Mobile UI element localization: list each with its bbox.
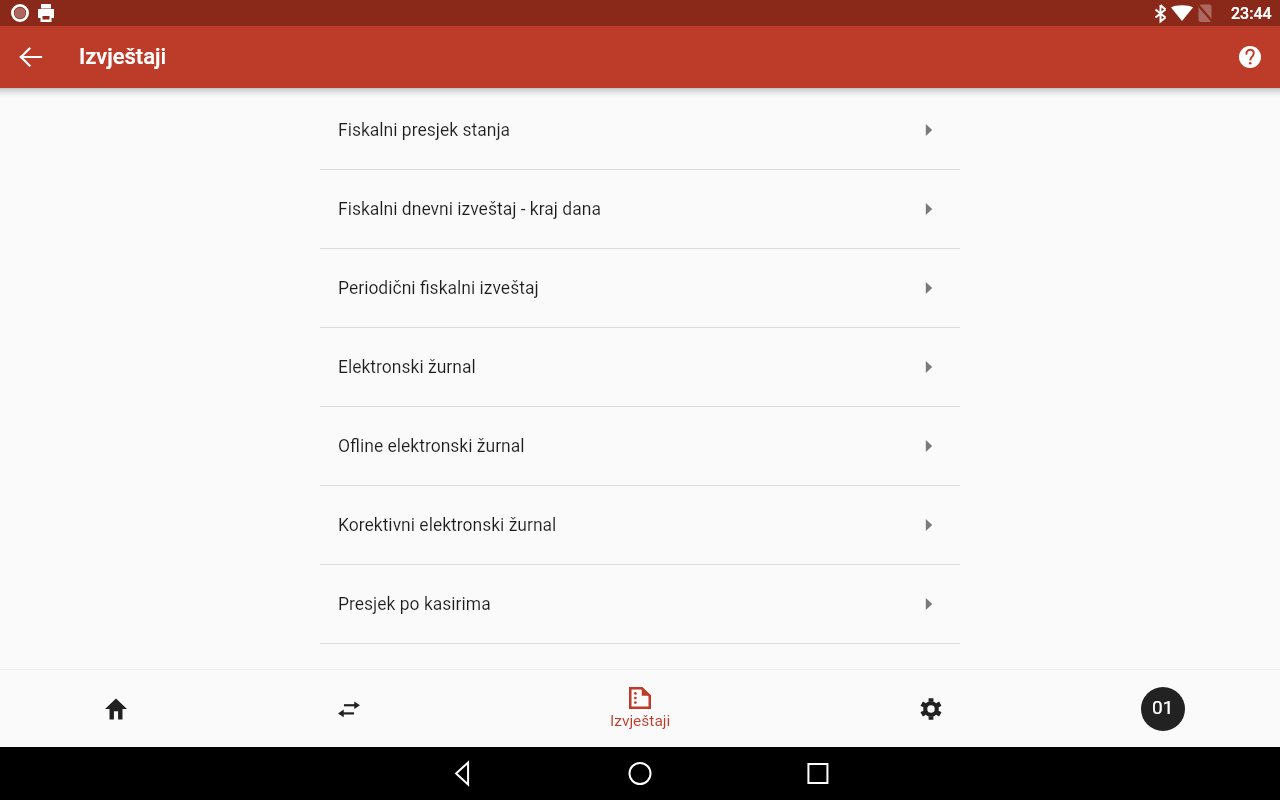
staticText: 23:44 (1231, 4, 1272, 23)
button[interactable]: Presjek po kasirima (0, 565, 1280, 643)
button[interactable]: Help (1226, 33, 1274, 81)
button[interactable]: Ofline elektronski žurnal (0, 407, 1280, 485)
staticText: 01 (1152, 696, 1174, 718)
button[interactable]: Fiskalni presjek stanja (0, 91, 1280, 169)
button[interactable]: Kasa 01 (1141, 687, 1185, 731)
staticText: Elektronski žurnal (338, 357, 922, 378)
staticText: Periodični fiskalni izveštaj (338, 278, 922, 299)
button[interactable]: Periodični fiskalni izveštaj (0, 249, 1280, 327)
staticText: Izvještaji (610, 712, 671, 730)
staticText: Korektivni elektronski žurnal (338, 515, 922, 536)
staticText: Presjek po kasirima (338, 594, 922, 615)
button[interactable]: Back (7, 33, 55, 81)
staticText: Fiskalni presjek stanja (338, 120, 922, 141)
button[interactable]: Fiskalni dnevni izveštaj - kraj dana (0, 170, 1280, 248)
staticText: Ofline elektronski žurnal (338, 436, 922, 457)
staticText: Fiskalni dnevni izveštaj - kraj dana (338, 199, 922, 220)
staticText: Izvještaji (79, 44, 167, 70)
button[interactable]: Settings (815, 670, 1046, 747)
button[interactable]: Home (0, 670, 232, 747)
button[interactable]: Transfers (232, 670, 465, 747)
button[interactable]: Izvještaji (465, 670, 815, 747)
button[interactable]: Korektivni elektronski žurnal (0, 486, 1280, 564)
button[interactable]: Elektronski žurnal (0, 328, 1280, 406)
